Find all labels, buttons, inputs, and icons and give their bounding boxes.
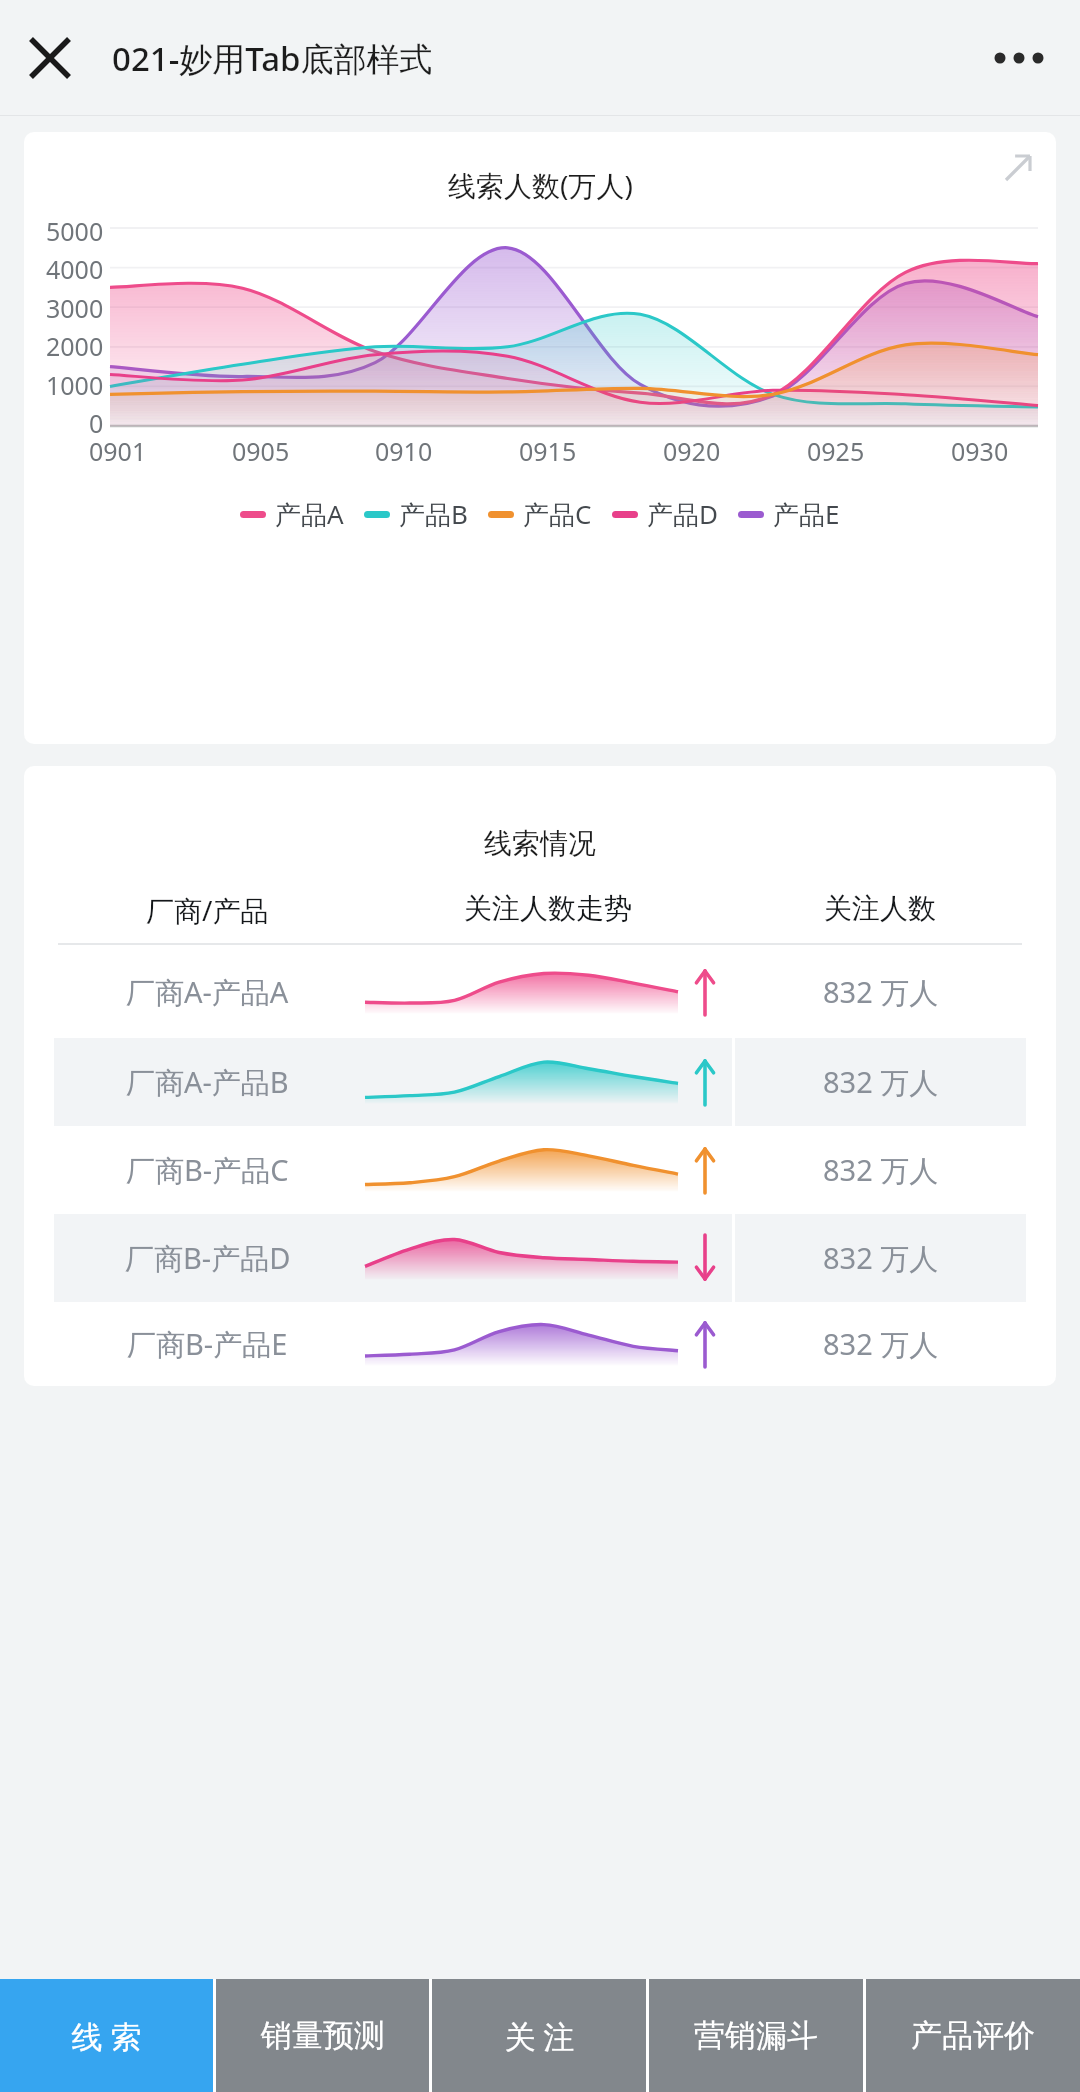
staticText: 营销漏斗 bbox=[694, 2016, 818, 2055]
staticText: 厂商B-产品D bbox=[125, 1238, 291, 1278]
button[interactable]: 厂商A-产品A bbox=[54, 945, 1026, 1038]
staticText: 厂商B-产品E bbox=[127, 1324, 288, 1364]
staticText: 0 bbox=[89, 406, 104, 440]
button[interactable]: 产品C bbox=[486, 492, 594, 536]
staticText: 3000 bbox=[46, 291, 104, 325]
staticText: 832 万人 bbox=[823, 1238, 939, 1278]
staticText: 0930 bbox=[951, 434, 1009, 468]
button[interactable]: 厂商B-产品C bbox=[54, 1126, 1026, 1214]
button[interactable]: 产品D bbox=[610, 492, 720, 536]
staticText: 832 万人 bbox=[823, 972, 939, 1012]
staticText: 产品评价 bbox=[911, 2016, 1035, 2055]
staticText: 产品E bbox=[773, 496, 840, 532]
button[interactable]: 厂商A-产品B bbox=[54, 1038, 1026, 1126]
button[interactable]: Close bbox=[18, 26, 82, 90]
staticText: 销量预测 bbox=[261, 2016, 385, 2055]
staticText: 2000 bbox=[46, 329, 104, 363]
staticText: 0915 bbox=[519, 434, 577, 468]
button[interactable]: 产品A bbox=[238, 492, 346, 536]
staticText: 关 注 bbox=[504, 2015, 575, 2057]
button[interactable]: 产品E bbox=[736, 492, 842, 536]
staticText: 产品C bbox=[523, 496, 592, 532]
staticText: 产品D bbox=[647, 496, 718, 532]
staticText: 线索人数(万人) bbox=[448, 166, 633, 204]
staticText: 线索情况 bbox=[484, 826, 596, 861]
staticText: 0901 bbox=[89, 434, 147, 468]
button[interactable]: 营销漏斗 bbox=[649, 1979, 863, 2092]
staticText: 0925 bbox=[807, 434, 865, 468]
staticText: 0905 bbox=[232, 434, 290, 468]
staticText: 产品B bbox=[399, 496, 468, 532]
staticText: 021-妙用Tab底部样式 bbox=[112, 36, 433, 81]
button[interactable]: 关 注 bbox=[432, 1979, 646, 2092]
button[interactable]: 线 索 bbox=[0, 1979, 213, 2092]
staticText: 832 万人 bbox=[823, 1062, 939, 1102]
button[interactable]: 厂商B-产品D bbox=[54, 1214, 1026, 1302]
staticText: 厂商A-产品B bbox=[126, 1062, 289, 1102]
button[interactable]: More options bbox=[984, 23, 1054, 93]
button[interactable]: 产品B bbox=[362, 492, 470, 536]
staticText: 产品A bbox=[275, 496, 344, 532]
staticText: 832 万人 bbox=[823, 1324, 939, 1364]
button[interactable]: Expand chart bbox=[996, 146, 1040, 190]
staticText: 关注人数 bbox=[824, 891, 936, 926]
staticText: 厂商/产品 bbox=[146, 891, 269, 929]
button[interactable]: 产品评价 bbox=[866, 1979, 1080, 2092]
staticText: 5000 bbox=[46, 214, 104, 248]
staticText: 线 索 bbox=[71, 2015, 142, 2057]
staticText: 0910 bbox=[375, 434, 433, 468]
staticText: 4000 bbox=[46, 252, 104, 286]
button[interactable]: 厂商B-产品E bbox=[54, 1302, 1026, 1386]
staticText: 关注人数走势 bbox=[464, 891, 632, 926]
staticText: 0920 bbox=[663, 434, 721, 468]
staticText: 832 万人 bbox=[823, 1150, 939, 1190]
staticText: 厂商A-产品A bbox=[126, 972, 289, 1012]
staticText: 1000 bbox=[46, 368, 104, 402]
button[interactable]: 线索人数(万人) bbox=[24, 132, 1056, 744]
button[interactable]: 销量预测 bbox=[216, 1979, 429, 2092]
staticText: 厂商B-产品C bbox=[126, 1150, 289, 1190]
